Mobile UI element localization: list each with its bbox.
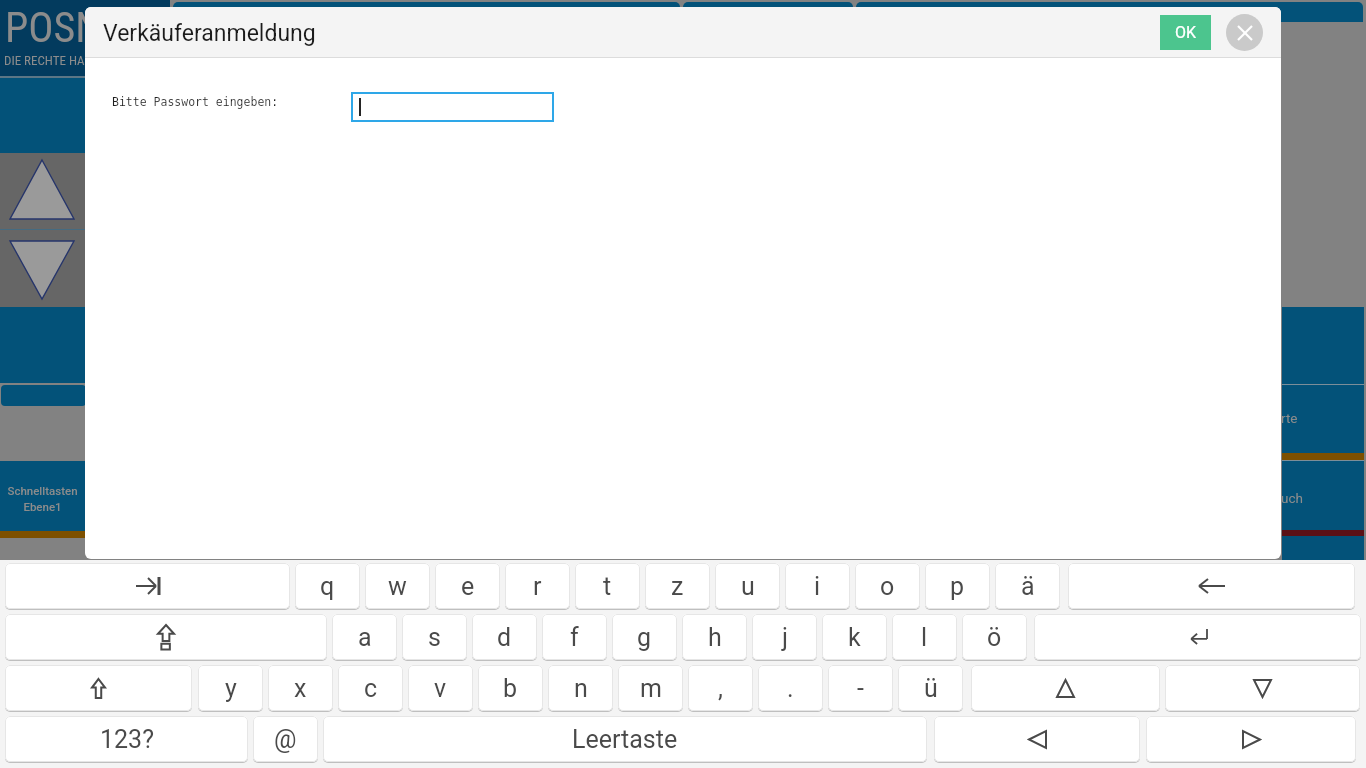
button[interactable]: , — [688, 665, 753, 711]
button[interactable]: o — [855, 563, 920, 609]
staticText: ä — [1021, 572, 1035, 601]
button[interactable]: Backspace — [1068, 563, 1355, 609]
button[interactable]: n — [548, 665, 613, 711]
staticText: l — [921, 623, 928, 652]
staticText: uch — [1281, 490, 1303, 506]
staticText: . — [787, 674, 794, 703]
staticText: v — [434, 674, 447, 703]
button[interactable]: Tab 1 — [173, 2, 680, 22]
staticText: n — [574, 674, 588, 703]
staticText: OK — [1175, 23, 1197, 42]
button[interactable]: p — [925, 563, 990, 609]
button[interactable]: Left — [934, 716, 1140, 762]
staticText: r — [533, 572, 542, 601]
button[interactable]: x — [268, 665, 333, 711]
staticText: t — [603, 572, 612, 601]
button[interactable]: @ — [253, 716, 318, 762]
staticText: Verkäuferanmeldung — [103, 20, 316, 47]
button[interactable]: Right — [1146, 716, 1356, 762]
button[interactable]: t — [575, 563, 640, 609]
staticText: Bitte Passwort eingeben: — [112, 95, 279, 108]
button[interactable]: g — [612, 614, 677, 660]
button[interactable]: y — [198, 665, 263, 711]
staticText: c — [364, 674, 378, 703]
button[interactable]: b — [478, 665, 543, 711]
button[interactable]: d — [472, 614, 537, 660]
staticText: o — [880, 572, 895, 601]
staticText: w — [388, 572, 407, 601]
button[interactable]: u — [715, 563, 780, 609]
button[interactable]: j — [752, 614, 817, 660]
staticText: d — [497, 623, 512, 652]
button[interactable]: l — [892, 614, 957, 660]
staticText: u — [741, 572, 755, 601]
button[interactable]: Tab 3 — [856, 2, 1363, 22]
button[interactable]: a — [332, 614, 397, 660]
button[interactable]: - — [828, 665, 893, 711]
button[interactable]: Enter — [1034, 614, 1361, 660]
button[interactable]: Close — [1226, 14, 1263, 51]
staticText: Leertaste — [572, 725, 678, 754]
button[interactable]: 123? — [5, 716, 248, 762]
button[interactable]: ü — [898, 665, 963, 711]
button[interactable]: Tab — [5, 563, 290, 609]
staticText: ö — [987, 623, 1002, 652]
button[interactable]: ö — [962, 614, 1027, 660]
button[interactable]: s — [402, 614, 467, 660]
staticText: z — [671, 572, 684, 601]
staticText: e — [461, 572, 475, 601]
staticText: j — [782, 623, 788, 652]
button[interactable]: Password field — [351, 92, 554, 122]
button[interactable]: r — [505, 563, 570, 609]
staticText: DIE RECHTE HAN — [4, 53, 89, 68]
staticText: y — [225, 674, 237, 703]
button[interactable]: . — [758, 665, 823, 711]
button[interactable]: Caps lock — [5, 614, 327, 660]
staticText: rte — [1281, 410, 1298, 426]
staticText: , — [718, 674, 723, 703]
staticText: POSN — [5, 3, 90, 52]
button[interactable]: e — [435, 563, 500, 609]
staticText: f — [570, 623, 579, 652]
staticText: Schnelltasten Ebene1 — [7, 484, 78, 513]
button[interactable]: k — [822, 614, 887, 660]
button[interactable]: h — [682, 614, 747, 660]
button[interactable]: Leertaste — [323, 716, 927, 762]
button[interactable]: q — [295, 563, 360, 609]
button[interactable]: Down — [1165, 665, 1360, 711]
staticText: m — [640, 674, 662, 703]
staticText: x — [294, 674, 307, 703]
staticText: k — [848, 623, 861, 652]
staticText: a — [358, 623, 372, 652]
button[interactable]: c — [338, 665, 403, 711]
staticText: i — [814, 572, 821, 601]
button[interactable]: w — [365, 563, 430, 609]
staticText: p — [950, 572, 965, 601]
button[interactable]: i — [785, 563, 850, 609]
staticText: - — [857, 674, 864, 703]
staticText: s — [428, 623, 441, 652]
button[interactable]: m — [618, 665, 683, 711]
staticText: @ — [274, 725, 297, 754]
staticText: h — [708, 623, 722, 652]
button[interactable]: z — [645, 563, 710, 609]
button[interactable]: Tab 2 — [683, 2, 853, 22]
staticText: g — [637, 623, 652, 652]
staticText: b — [503, 674, 518, 703]
staticText: q — [320, 572, 335, 601]
staticText: 123? — [100, 725, 154, 754]
button[interactable]: Up — [971, 665, 1160, 711]
button[interactable]: Shift — [5, 665, 192, 711]
button[interactable]: ä — [995, 563, 1060, 609]
button[interactable]: v — [408, 665, 473, 711]
button[interactable]: f — [542, 614, 607, 660]
staticText: ü — [924, 674, 938, 703]
button[interactable]: OK — [1160, 15, 1211, 50]
